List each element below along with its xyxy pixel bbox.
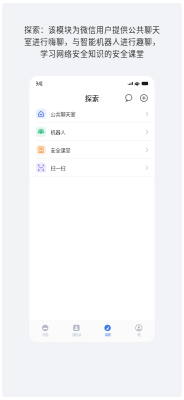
staticText: 机器人 <box>50 128 65 135</box>
button[interactable]: 探索 <box>92 325 123 337</box>
staticText: 通讯录 <box>72 332 81 337</box>
button[interactable]: 通讯录 <box>61 325 92 337</box>
button[interactable]: 扫一扫 <box>29 159 154 177</box>
button[interactable]: 安全课堂 <box>29 141 154 159</box>
staticText: 探索 <box>105 332 111 337</box>
staticText: 安全课堂 <box>50 146 70 153</box>
button[interactable]: 消息 <box>30 325 61 337</box>
button[interactable]: 我 <box>123 325 154 337</box>
staticText: 我 <box>137 332 140 337</box>
button[interactable]: 公共聊天室 <box>29 105 154 123</box>
staticText: 扫一扫 <box>50 164 65 171</box>
staticText: 探索：该模块为微信用户提供公共聊天室进行嗨聊，与智能机器人进行趣聊，学习网络安全… <box>24 24 160 59</box>
button[interactable]: 机器人 <box>29 123 154 141</box>
staticText: 探索 <box>85 93 99 103</box>
button[interactable]: 消息 <box>125 94 133 102</box>
staticText: 公共聊天室 <box>50 110 75 117</box>
staticText: 消息 <box>42 332 48 337</box>
staticText: 9:41 <box>35 80 42 87</box>
button[interactable]: 添加 <box>140 94 148 102</box>
